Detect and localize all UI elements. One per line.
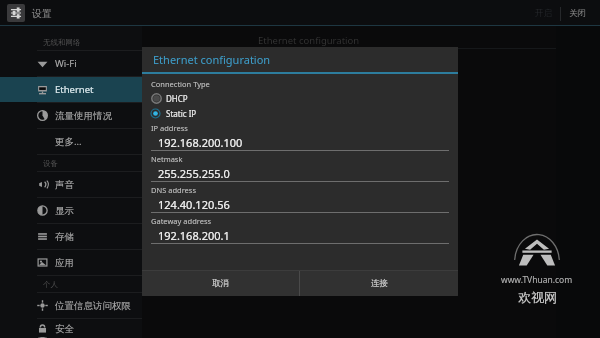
button[interactable]: 连接 — [300, 271, 458, 296]
staticText: 欢视网 — [518, 289, 557, 305]
staticText: 应用 — [55, 257, 74, 269]
staticText: Wi-Fi — [55, 57, 77, 70]
staticText: Gateway address — [151, 216, 212, 226]
button[interactable]: Ethernet — [0, 77, 142, 102]
staticText: 更多... — [55, 135, 82, 148]
button[interactable]: 安全 — [0, 319, 142, 338]
staticText: 流量使用情况 — [55, 110, 112, 122]
staticText: 设置 — [32, 7, 52, 20]
staticText: DHCP — [166, 93, 188, 104]
button[interactable]: 124.40.120.56 — [151, 196, 449, 212]
button[interactable]: 应用 — [0, 250, 142, 275]
button[interactable]: 192.168.200.100 — [151, 134, 449, 150]
button[interactable]: 关闭 — [561, 5, 594, 22]
button[interactable]: Static IP — [151, 106, 449, 121]
staticText: 192.168.200.100 — [158, 135, 243, 150]
staticText: DNS address — [151, 185, 197, 195]
button[interactable]: 192.168.200.1 — [151, 227, 449, 243]
staticText: 连接 — [371, 278, 388, 289]
button[interactable]: 取消 — [142, 271, 299, 296]
button[interactable]: 显示 — [0, 198, 142, 223]
staticText: 开启 — [535, 8, 552, 19]
button[interactable]: Settings app icon — [7, 4, 25, 22]
staticText: Connection Type — [151, 79, 210, 89]
button[interactable]: 流量使用情况 — [0, 103, 142, 128]
button[interactable]: 更多... — [0, 129, 142, 154]
staticText: 关闭 — [569, 8, 586, 19]
staticText: 255.255.255.0 — [158, 166, 230, 181]
staticText: Ethernet configuration — [153, 52, 271, 67]
staticText: Static IP — [166, 108, 197, 119]
staticText: 安全 — [55, 323, 74, 335]
staticText: 声音 — [55, 179, 74, 191]
staticText: Netmask — [151, 154, 183, 164]
staticText: Ethernet — [55, 83, 94, 96]
staticText: Ethernet configuration — [258, 34, 360, 47]
staticText: 设备 — [43, 159, 58, 168]
staticText: 位置信息访问权限 — [55, 300, 131, 312]
button[interactable]: Wi-Fi — [0, 51, 142, 76]
staticText: 显示 — [55, 205, 74, 217]
staticText: www.TVhuan.com — [501, 274, 573, 286]
staticText: 192.168.200.1 — [158, 228, 230, 243]
button[interactable]: 255.255.255.0 — [151, 165, 449, 181]
button[interactable]: 位置信息访问权限 — [0, 293, 142, 318]
staticText: 124.40.120.56 — [158, 197, 230, 212]
button[interactable]: 存储 — [0, 224, 142, 249]
staticText: 存储 — [55, 231, 74, 243]
button[interactable]: DHCP — [151, 91, 449, 106]
staticText: 无线和网络 — [43, 38, 81, 47]
staticText: 取消 — [212, 278, 229, 289]
staticText: IP address — [151, 123, 188, 133]
button[interactable]: 开启 — [527, 5, 560, 22]
button[interactable]: 声音 — [0, 172, 142, 197]
staticText: 个人 — [43, 280, 58, 289]
